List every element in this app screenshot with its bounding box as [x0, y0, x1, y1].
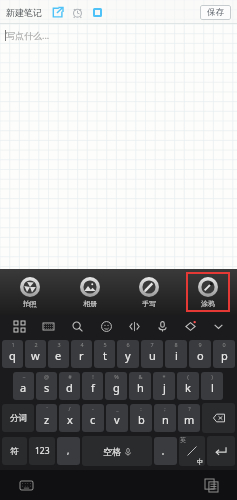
button[interactable]: / — [59, 404, 80, 432]
staticText: 7 — [150, 341, 154, 348]
button[interactable]: 涂鸦 — [186, 272, 230, 312]
staticText: 9 — [198, 341, 202, 348]
button[interactable]: 2 — [25, 340, 46, 368]
button[interactable]: 拍照 — [8, 272, 52, 312]
staticText: z — [44, 412, 50, 427]
staticText: # — [68, 373, 72, 380]
button[interactable]: 分词 — [2, 404, 34, 432]
staticText: 4 — [80, 341, 84, 348]
staticText: c — [90, 412, 96, 427]
staticText: 写点什么... — [6, 29, 50, 41]
staticText: e — [55, 348, 62, 363]
staticText: 0 — [222, 341, 226, 348]
staticText: r — [79, 348, 84, 363]
staticText: 拍照 — [23, 299, 37, 308]
button[interactable]: 4 — [71, 340, 92, 368]
button[interactable]: ~ — [13, 372, 34, 400]
button[interactable]: Keyboard layout — [34, 315, 63, 338]
button[interactable]: Hide keyboard — [204, 315, 232, 338]
button[interactable]: Recents — [201, 475, 221, 495]
button[interactable]: Backspace — [202, 403, 235, 433]
staticText: , — [67, 445, 70, 457]
button[interactable]: * — [153, 372, 175, 400]
button[interactable]: Language toggle — [179, 436, 205, 466]
staticText: _ — [116, 405, 119, 412]
staticText: b — [138, 412, 145, 427]
button[interactable]: Voice input — [148, 315, 176, 338]
button[interactable]: 5 — [94, 340, 115, 368]
button[interactable]: Checklist — [89, 4, 105, 20]
button[interactable]: 3 — [48, 340, 69, 368]
button[interactable]: @ — [36, 372, 57, 400]
staticText: p — [221, 348, 228, 363]
button[interactable]: 9 — [189, 340, 211, 368]
button[interactable]: 6 — [117, 340, 139, 368]
staticText: u — [149, 348, 156, 363]
staticText: 中 — [197, 458, 204, 466]
button[interactable]: Apps — [5, 315, 34, 338]
button[interactable]: % — [105, 372, 127, 400]
button[interactable]: Share — [49, 4, 65, 20]
staticText: 英 — [180, 436, 186, 444]
staticText: j — [163, 380, 166, 395]
staticText: ; — [164, 405, 166, 412]
button[interactable]: 符 — [2, 437, 27, 465]
staticText: k — [185, 380, 191, 395]
button[interactable]: # — [59, 372, 80, 400]
staticText: @ — [44, 373, 49, 380]
staticText: i — [175, 348, 178, 363]
staticText: 相册 — [83, 299, 97, 308]
staticText: ) — [211, 373, 213, 380]
button[interactable]: 手写 — [127, 272, 171, 312]
staticText: l — [211, 380, 214, 395]
staticText: q — [9, 348, 16, 363]
button[interactable]: 保存 — [200, 5, 231, 20]
button[interactable]: 。 — [154, 437, 177, 465]
button[interactable]: Stickers — [176, 315, 204, 338]
staticText: 分词 — [10, 413, 27, 424]
staticText: 8 — [174, 341, 178, 348]
staticText: h — [137, 380, 144, 395]
button[interactable]: & — [129, 372, 151, 400]
staticText: 符 — [10, 446, 19, 457]
staticText: x — [67, 412, 73, 427]
button[interactable]: Reminder — [69, 4, 85, 20]
button[interactable]: 1 — [2, 340, 23, 368]
staticText: 123 — [35, 445, 50, 457]
button[interactable]: Keyboard — [16, 475, 36, 495]
button[interactable]: ; — [154, 404, 176, 432]
button[interactable]: ) — [201, 372, 223, 400]
staticText: ` — [46, 405, 48, 412]
button[interactable]: 空格 — [82, 436, 152, 466]
button[interactable]: Clipboard — [120, 315, 148, 338]
button[interactable]: : — [130, 404, 152, 432]
staticText: w — [31, 348, 40, 363]
staticText: m — [184, 412, 195, 427]
staticText: 涂鸦 — [201, 299, 215, 308]
button[interactable]: 0 — [213, 340, 235, 368]
button[interactable]: , — [57, 437, 80, 465]
staticText: a — [20, 380, 27, 395]
button[interactable]: ! — [82, 372, 103, 400]
button[interactable]: Enter — [207, 436, 235, 466]
button[interactable]: Emoji — [92, 315, 120, 338]
staticText: s — [44, 380, 50, 395]
button[interactable]: - — [82, 404, 104, 432]
staticText: - — [92, 405, 94, 412]
button[interactable]: 8 — [165, 340, 187, 368]
button[interactable]: 相册 — [68, 272, 112, 312]
staticText: o — [197, 348, 204, 363]
button[interactable]: ` — [36, 404, 57, 432]
button[interactable]: _ — [106, 404, 128, 432]
staticText: y — [125, 348, 131, 363]
staticText: 空格 — [103, 446, 121, 457]
staticText: ( — [187, 373, 189, 380]
staticText: 保存 — [207, 7, 224, 18]
staticText: 3 — [57, 341, 61, 348]
button[interactable]: Search — [63, 315, 92, 338]
button[interactable]: 123 — [29, 437, 55, 465]
button[interactable]: 7 — [141, 340, 163, 368]
staticText: 5 — [103, 341, 107, 348]
button[interactable]: ? — [178, 404, 200, 432]
button[interactable]: ( — [177, 372, 199, 400]
